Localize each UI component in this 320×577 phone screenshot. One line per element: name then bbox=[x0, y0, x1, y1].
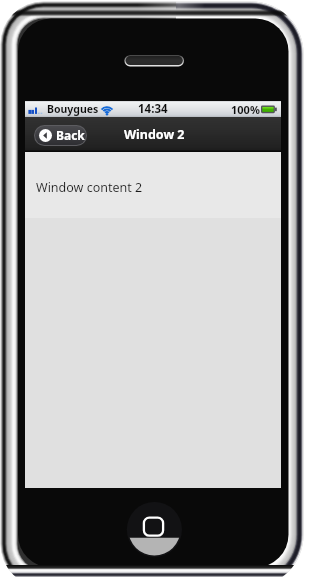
staticText: Bouygues bbox=[47, 102, 99, 116]
staticText: Window 2 bbox=[124, 126, 185, 143]
staticText: Window content 2 bbox=[36, 179, 143, 196]
button[interactable]: Home bbox=[126, 501, 183, 558]
staticText: 100% bbox=[231, 102, 260, 117]
staticText: 14:34 bbox=[138, 101, 168, 117]
button[interactable]: Back bbox=[35, 126, 86, 145]
staticText: Back bbox=[56, 127, 85, 143]
